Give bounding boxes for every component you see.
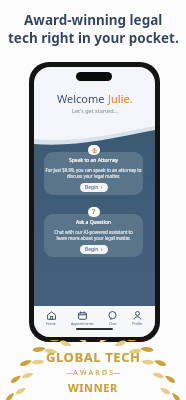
staticText: WINNER [68, 380, 118, 395]
staticText: ? [92, 207, 96, 217]
other: Chat [108, 311, 117, 320]
staticText: Speak to an Attorney [69, 157, 118, 164]
staticText: Ask a Question [76, 219, 112, 226]
staticText: tech right in your pocket. [8, 29, 179, 47]
button[interactable]: Ask a Question [44, 214, 143, 257]
other: Appointments [78, 311, 87, 320]
button[interactable]: Appointments [69, 306, 96, 326]
staticText: Home [46, 321, 56, 326]
staticText: Chat [109, 321, 117, 326]
staticText: Chat with our AI-powered assistant to le… [54, 229, 133, 241]
staticText: Begin › [85, 246, 103, 253]
staticText: Welcome [57, 91, 108, 106]
button[interactable]: Begin › [80, 183, 108, 192]
staticText: —A W A R D S— [66, 368, 121, 378]
staticText: Award-winning legal [24, 11, 163, 29]
button[interactable]: Profile [130, 306, 145, 326]
staticText: GLOBAL TECH [46, 348, 141, 366]
staticText: For just $9.99, you can speak to an atto… [45, 167, 142, 179]
staticText: Let's get started... [72, 107, 118, 114]
other: Profile [133, 311, 142, 320]
staticText: Begin › [85, 184, 103, 191]
staticText: Julie. [108, 91, 133, 106]
other: Home [47, 311, 56, 320]
button[interactable]: Chat [106, 306, 119, 326]
button[interactable]: Home [44, 306, 58, 326]
staticText: Appointments [71, 321, 94, 326]
button[interactable]: Begin › [80, 245, 108, 254]
staticText: Profile [132, 321, 143, 326]
button[interactable]: Speak to an Attorney [44, 152, 143, 195]
